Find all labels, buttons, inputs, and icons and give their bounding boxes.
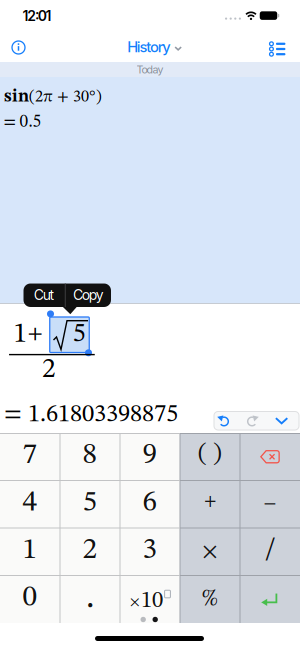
staticText: 9 [142, 441, 157, 470]
staticText: 8 [82, 441, 97, 470]
staticText: ( ) [198, 441, 222, 466]
button[interactable]: − [240, 480, 300, 528]
staticText: Today [136, 63, 163, 76]
button[interactable]: 6 [120, 480, 180, 528]
button[interactable]: 5 [60, 480, 120, 528]
staticText: 10 [141, 590, 163, 612]
staticText: × [202, 540, 217, 563]
button[interactable] [9, 38, 27, 56]
button[interactable]: History [127, 38, 182, 56]
staticText: 5 [72, 321, 85, 348]
button[interactable] [211, 412, 237, 430]
staticText: sin(2π + 30°) [4, 88, 102, 105]
staticText: 3 [142, 536, 157, 565]
button[interactable]: / [240, 528, 300, 575]
button[interactable]: 0 [0, 575, 60, 623]
staticText: % [201, 587, 218, 611]
staticText: Cut [34, 286, 55, 303]
staticText: . [86, 581, 94, 616]
button[interactable] [239, 412, 265, 430]
staticText: Copy [73, 286, 104, 303]
button[interactable]: Copy [66, 283, 110, 307]
staticText: 2 [82, 536, 97, 565]
staticText: / [264, 535, 275, 564]
staticText: = 0.5 [3, 114, 41, 131]
button[interactable]: × [180, 528, 240, 575]
staticText: = 1.61803398875 [4, 403, 178, 427]
button[interactable]: 1 [0, 528, 60, 575]
staticText: History [127, 38, 170, 56]
staticText: + [27, 323, 42, 345]
button[interactable]: 8 [60, 433, 120, 480]
button[interactable]: 9 [120, 433, 180, 480]
staticText: − [263, 495, 276, 513]
staticText: + [204, 493, 216, 510]
button[interactable]: 7 [0, 433, 60, 480]
button[interactable]: × [120, 575, 180, 623]
button[interactable]: 3 [120, 528, 180, 575]
staticText: 6 [142, 488, 157, 517]
staticText: × [130, 595, 140, 610]
button[interactable]: % [180, 575, 240, 623]
button[interactable]: Cut [24, 283, 65, 307]
staticText: 0 [22, 583, 37, 612]
button[interactable]: . [60, 575, 120, 623]
staticText: 2 [42, 356, 56, 383]
button[interactable] [240, 433, 300, 480]
staticText: 4 [22, 488, 37, 517]
button[interactable] [240, 575, 300, 623]
staticText: 1 [14, 321, 28, 348]
button[interactable]: + [180, 480, 240, 528]
button[interactable] [268, 40, 286, 58]
button[interactable] [269, 412, 295, 430]
button[interactable]: ( ) [180, 433, 240, 480]
staticText: 7 [22, 441, 37, 470]
button[interactable]: 2 [60, 528, 120, 575]
staticText: 1 [22, 536, 37, 565]
staticText: 5 [82, 488, 97, 517]
button[interactable]: 4 [0, 480, 60, 528]
staticText: 12:01 [22, 7, 52, 24]
